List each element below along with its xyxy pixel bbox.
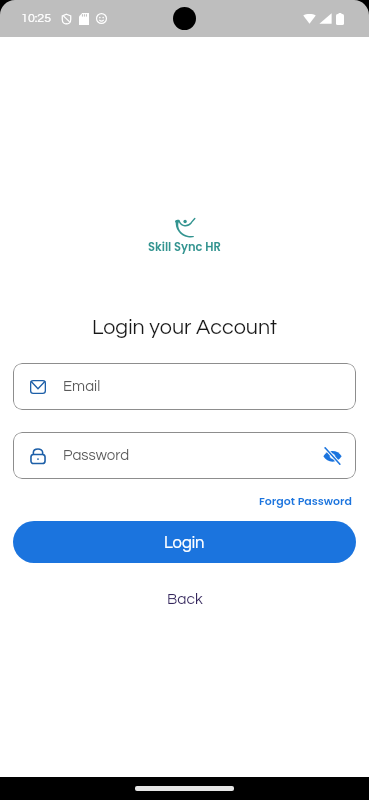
staticText: Login <box>164 534 205 551</box>
staticText: 10:25 <box>21 12 52 25</box>
button[interactable]: Back <box>167 591 203 607</box>
staticText: Login your Account <box>92 316 277 338</box>
staticText: Back <box>167 591 203 607</box>
button[interactable]: Login <box>13 521 356 563</box>
button[interactable]: Show password <box>323 447 342 465</box>
staticText: Password <box>63 448 130 463</box>
staticText: Email <box>63 379 101 394</box>
staticText: Forgot Password <box>259 493 352 508</box>
button[interactable]: Forgot Password <box>259 493 352 508</box>
button[interactable]: Email <box>13 363 356 410</box>
button[interactable]: Password <box>13 432 356 479</box>
staticText: Skill Sync HR <box>148 239 221 255</box>
